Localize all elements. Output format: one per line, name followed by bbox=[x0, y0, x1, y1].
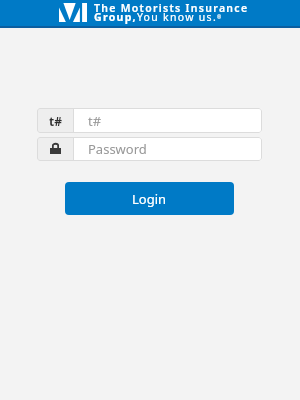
button[interactable]: Password bbox=[37, 137, 262, 161]
staticText: The Motorists Insurance bbox=[94, 1, 249, 15]
staticText: t# bbox=[49, 113, 62, 129]
other: Motorists Insurance Group logo bbox=[59, 3, 87, 22]
button[interactable]: t# bbox=[37, 108, 262, 133]
staticText: Login bbox=[132, 190, 167, 208]
staticText: Group,You know us.® bbox=[94, 10, 223, 24]
button[interactable]: Login bbox=[65, 182, 234, 215]
staticText: Password bbox=[88, 140, 147, 158]
staticText: t# bbox=[88, 112, 102, 130]
